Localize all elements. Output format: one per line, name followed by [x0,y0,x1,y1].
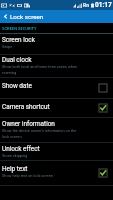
button[interactable]: Camera shortcut [0,98,113,118]
button[interactable]: Show date [0,77,113,99]
staticText: Owner information [2,120,55,128]
staticText: SCREEN SECURITY [2,26,37,31]
button[interactable]: Screen lock [0,33,113,55]
staticText: Dual clock [2,56,32,64]
button[interactable]: Help text [0,160,113,186]
staticText: Lock screen [10,13,44,20]
staticText: Show date [2,82,32,90]
button[interactable]: Dual clock [0,54,113,78]
staticText: Camera shortcut [2,103,50,111]
staticText: Show help text on lock screen [2,173,53,178]
staticText: Stone skipping [2,153,28,158]
staticText: Rn [83,2,90,8]
button[interactable]: Navigate up from Lock screen [0,10,113,23]
staticText: Unlock effect [2,145,40,153]
button[interactable]: Unlock effect [0,142,113,161]
staticText: Show the device owner's information on t… [2,128,80,139]
staticText: 01:17 [95,1,112,9]
staticText: Help text [2,165,28,173]
staticText: Screen lock [2,36,35,44]
staticText: Swipe [2,44,13,49]
button[interactable]: Owner information [0,117,113,143]
staticText: Show both local and home time zones when… [2,64,80,75]
